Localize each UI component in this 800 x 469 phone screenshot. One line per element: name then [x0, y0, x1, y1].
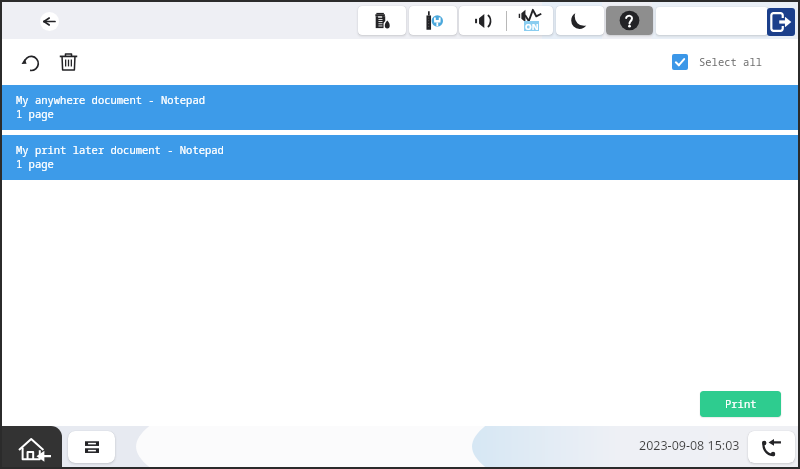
button[interactable]: Jobs	[68, 431, 115, 463]
button[interactable]: Print	[700, 391, 781, 417]
staticText: 1 page	[16, 107, 54, 121]
button[interactable]: Log out	[767, 8, 795, 36]
staticText: Print	[725, 397, 757, 411]
button[interactable]: Sound on	[506, 6, 553, 35]
button[interactable]: Back	[40, 12, 59, 31]
staticText: 2023-09-08 15:03	[639, 437, 740, 454]
button[interactable]: Undo	[16, 48, 44, 76]
button[interactable]: Help	[606, 6, 653, 35]
staticText: Select all	[699, 55, 762, 69]
button[interactable]: Night mode	[556, 6, 604, 35]
button[interactable]: Home	[2, 426, 62, 467]
button[interactable]: Volume	[459, 6, 506, 35]
button[interactable]: Toner	[358, 6, 406, 35]
staticText: My anywhere document - Notepad	[16, 93, 205, 107]
button[interactable]: Delete	[54, 48, 82, 76]
button[interactable]: Select all	[668, 50, 766, 74]
staticText: 1 page	[16, 157, 54, 171]
staticText: ON	[525, 21, 539, 31]
staticText: My print later document - Notepad	[16, 143, 224, 157]
button[interactable]: My anywhere document - Notepad	[2, 85, 798, 130]
button[interactable]: Power status	[409, 6, 457, 35]
button[interactable]: Call	[748, 431, 795, 463]
button[interactable]: My print later document - Notepad	[2, 135, 798, 180]
